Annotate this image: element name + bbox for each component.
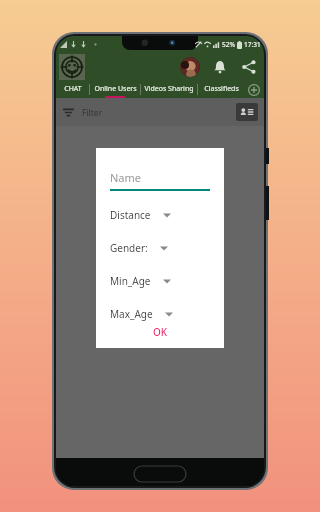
button[interactable]: CHAT	[56, 82, 89, 98]
staticText: 17:31	[244, 40, 261, 49]
button[interactable]: Name	[110, 170, 210, 191]
staticText: Videos Sharing	[144, 84, 194, 94]
button[interactable]: Add	[244, 82, 264, 98]
button[interactable]: Classifieds	[198, 82, 244, 98]
button[interactable]: Gender:	[110, 241, 210, 255]
staticText: Name	[110, 170, 142, 185]
staticText: Online Users	[94, 84, 137, 94]
button[interactable]: Min_Age	[110, 274, 210, 288]
staticText: Min_Age	[110, 274, 151, 288]
staticText: CHAT	[64, 84, 82, 94]
button[interactable]: Filter	[62, 106, 103, 119]
button[interactable]: Contacts	[236, 103, 258, 121]
staticText: Filter	[82, 107, 103, 119]
button[interactable]: Distance	[110, 208, 210, 222]
staticText: Distance	[110, 208, 151, 222]
button[interactable]: Max_Age	[110, 307, 210, 321]
button[interactable]: App logo	[59, 54, 85, 80]
button[interactable]: Videos Sharing	[141, 82, 197, 98]
button[interactable]: Share	[238, 56, 260, 78]
staticText: Max_Age	[110, 307, 153, 321]
button[interactable]: OK	[145, 322, 176, 342]
button[interactable]: Notifications	[209, 56, 231, 78]
staticText: 52%	[222, 40, 235, 49]
staticText: Classifieds	[204, 84, 239, 94]
button[interactable]: Online Users	[90, 82, 140, 98]
staticText: OK	[153, 325, 168, 339]
button[interactable]: Profile	[180, 57, 200, 77]
staticText: Gender:	[110, 241, 148, 255]
